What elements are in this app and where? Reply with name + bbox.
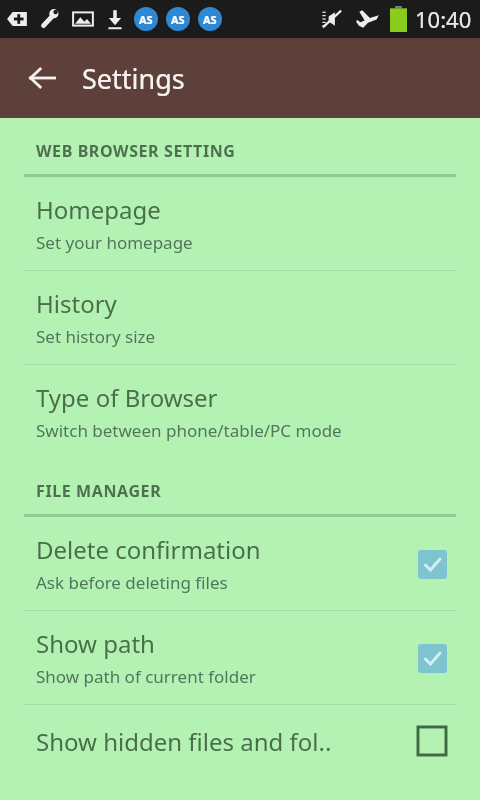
staticText: History [36,287,117,320]
button[interactable]: History [0,271,480,364]
staticText: Show hidden files and fol.. [36,725,332,758]
staticText: Type of Browser [36,381,218,414]
staticText: Delete confirmation [36,533,261,566]
staticText: FILE MANAGER [36,480,162,502]
staticText: Set your homepage [36,231,193,254]
staticText: Settings [82,60,185,97]
button[interactable]: Back [14,50,70,106]
button[interactable]: Checked [412,544,452,584]
staticText: AS [171,12,185,27]
button[interactable]: Show path [0,611,480,704]
staticText: Ask before deleting files [36,571,228,594]
staticText: AS [203,12,217,27]
staticText: AS [139,12,153,27]
staticText: Homepage [36,193,161,226]
staticText: Show path of current folder [36,665,256,688]
button[interactable]: Checked [412,638,452,678]
staticText: 10:40 [415,4,472,34]
staticText: Show path [36,627,155,660]
button[interactable]: Show hidden files and fol.. [0,705,480,777]
button[interactable]: Type of Browser [0,365,480,458]
staticText: Set history size [36,325,156,348]
staticText: WEB BROWSER SETTING [36,140,236,162]
button[interactable]: Unchecked [412,721,452,761]
button[interactable]: Homepage [0,177,480,270]
button[interactable]: Delete confirmation [0,517,480,610]
staticText: Switch between phone/table/PC mode [36,419,342,442]
